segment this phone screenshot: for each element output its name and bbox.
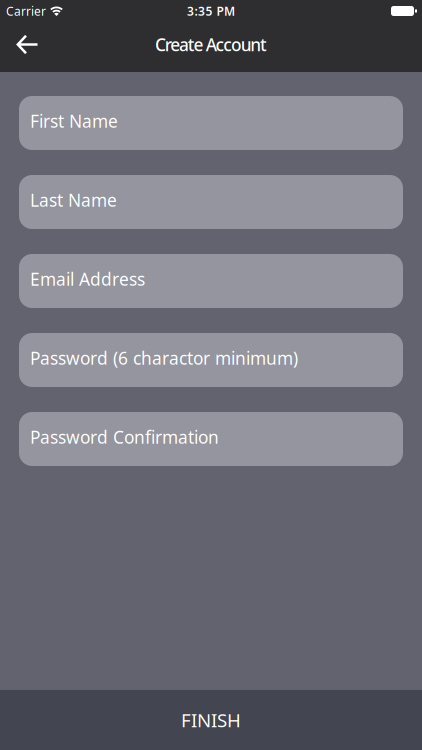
button[interactable]: Email Address (19, 254, 403, 308)
staticText: First Name (30, 109, 118, 132)
staticText: Password Confirmation (30, 425, 219, 448)
staticText: 3:35 PM (187, 3, 235, 19)
staticText: Password (6 charactor minimum) (30, 346, 298, 369)
button[interactable]: Last Name (19, 175, 403, 229)
staticText: Last Name (30, 188, 117, 211)
staticText: Carrier (6, 3, 46, 19)
staticText: Create Account (155, 33, 267, 56)
button[interactable]: FINISH (0, 690, 422, 750)
button[interactable]: Password Confirmation (19, 412, 403, 466)
staticText: Email Address (30, 267, 145, 290)
staticText: FINISH (181, 708, 241, 732)
button[interactable]: First Name (19, 96, 403, 150)
button[interactable]: Back (0, 25, 51, 64)
button[interactable]: Password (6 charactor minimum) (19, 333, 403, 387)
